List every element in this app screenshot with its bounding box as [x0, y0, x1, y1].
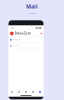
button[interactable]: Tab: [36, 89, 43, 94]
staticText: 9:41: [11, 27, 14, 29]
button[interactable]: Tab: [22, 89, 29, 94]
button[interactable]: Tab: [8, 89, 15, 94]
button[interactable]: Meeting notes: [8, 37, 43, 43]
staticText: Inbox Zero: [15, 32, 31, 35]
button[interactable]: Tab: [15, 89, 22, 94]
staticText: Unified inbox: [27, 13, 36, 14]
button[interactable]: Tab: [29, 89, 36, 94]
button[interactable]: Receipt: [8, 43, 43, 49]
staticText: Receipt: [13, 45, 18, 47]
staticText: Meeting notes: [13, 39, 22, 41]
button[interactable]: Inbox Zero: [8, 30, 43, 37]
staticText: Mail: [26, 3, 38, 10]
